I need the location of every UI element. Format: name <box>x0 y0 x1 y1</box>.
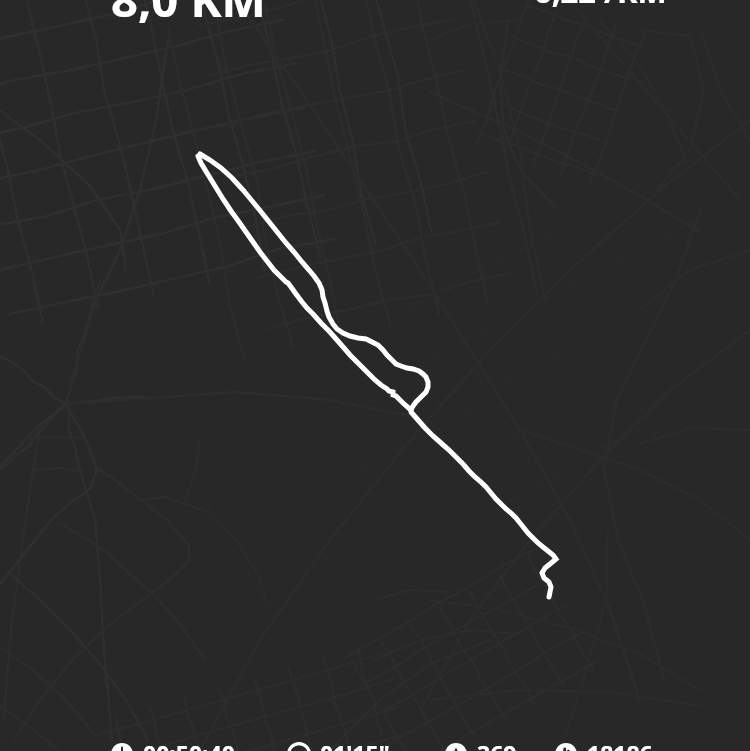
other: Duration <box>111 743 133 751</box>
staticText: 18186 <box>587 738 653 751</box>
button[interactable]: 6,22 /KM <box>534 0 667 12</box>
button[interactable]: Average pace <box>288 738 390 751</box>
button[interactable]: 8,0 KM <box>111 0 266 31</box>
staticText: 8,0 KM <box>111 0 266 31</box>
other: Average pace <box>288 743 310 751</box>
button[interactable]: Steps <box>555 738 653 751</box>
button[interactable]: Calories <box>445 738 517 751</box>
staticText: 6,22 /KM <box>534 0 667 12</box>
other: Calories <box>445 743 467 751</box>
button[interactable]: Duration <box>111 738 235 751</box>
staticText: 369 <box>477 738 517 751</box>
staticText: 00:50:40 <box>143 738 235 751</box>
other: Steps <box>555 743 577 751</box>
staticText: 01'15" <box>320 738 390 751</box>
